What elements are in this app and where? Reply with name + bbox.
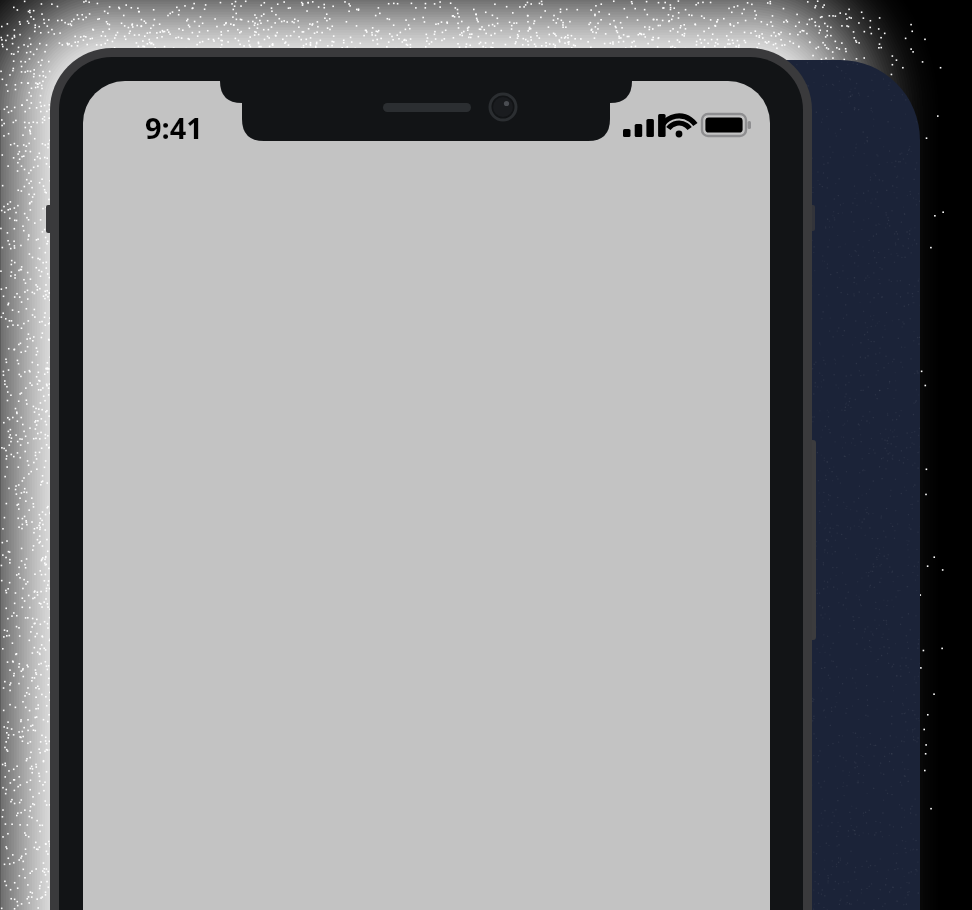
button[interactable]: iPhone device mockup, lock screen bbox=[0, 0, 972, 910]
